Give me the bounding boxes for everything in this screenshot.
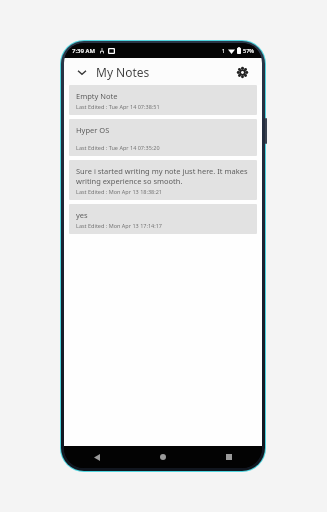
staticText: 57% (243, 47, 254, 54)
button[interactable]: Empty Note (69, 85, 257, 115)
staticText: Hyper OS (76, 125, 110, 135)
button[interactable]: Home (130, 446, 196, 468)
button[interactable]: Settings (232, 62, 252, 82)
staticText: Last Edited : Mon Apr 13 18:38:21 (76, 188, 162, 195)
button[interactable]: Back (64, 446, 130, 468)
staticText: Empty Note (76, 91, 118, 101)
staticText: My Notes (96, 64, 150, 80)
staticText: Last Edited : Tue Apr 14 07:38:51 (76, 103, 160, 110)
button[interactable]: Collapse notes (74, 64, 90, 80)
staticText: Last Edited : Mon Apr 13 17:14:17 (76, 222, 162, 229)
button[interactable]: Recent apps (196, 446, 262, 468)
button[interactable]: yes (69, 204, 257, 234)
staticText: yes (76, 210, 88, 220)
staticText: 7:39 AM (72, 47, 95, 55)
button[interactable]: Hyper OS (69, 119, 257, 156)
staticText: writing experience so smooth. (76, 176, 183, 186)
staticText: Sure i started writing my note just here… (76, 166, 248, 176)
button[interactable]: Sure i started writing my note just here… (69, 160, 257, 200)
staticText: Last Edited : Tue Apr 14 07:35:20 (76, 144, 160, 151)
staticText: 1 (222, 47, 226, 54)
